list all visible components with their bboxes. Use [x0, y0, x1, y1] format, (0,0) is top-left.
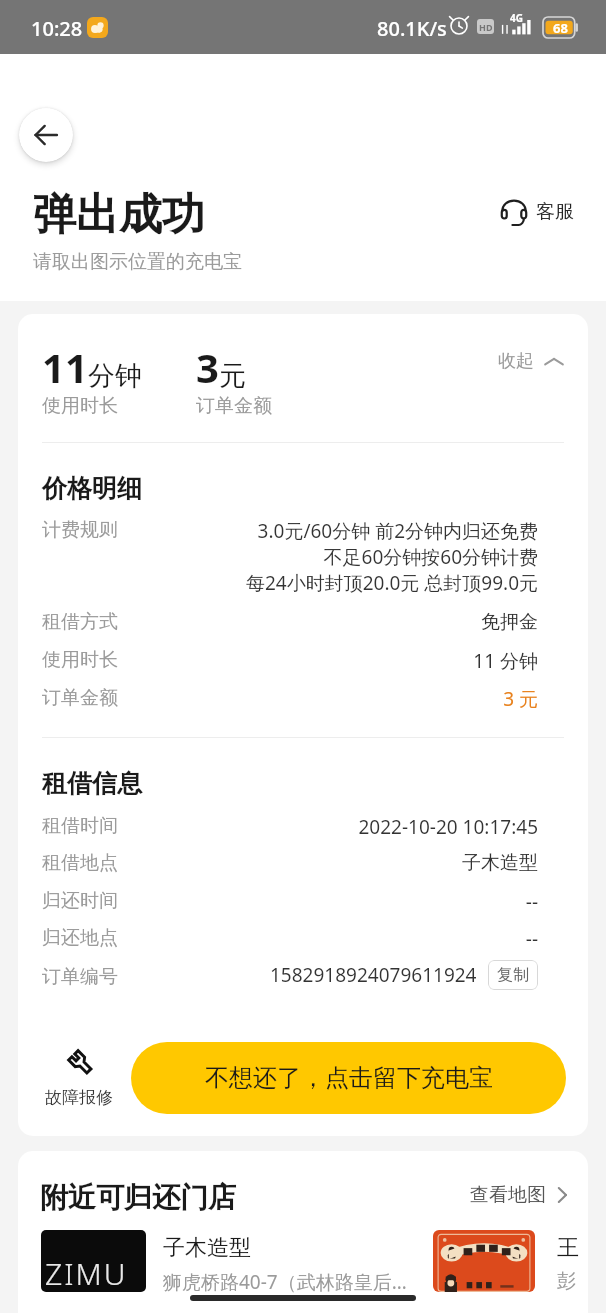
staticText: 1582918924079611924	[270, 962, 477, 988]
staticText: 归还时间	[42, 889, 118, 913]
button[interactable]: ZIMU	[41, 1230, 411, 1295]
button[interactable]: 收起	[498, 350, 564, 373]
staticText: 收起	[498, 350, 534, 373]
staticText: 彭	[557, 1269, 576, 1293]
staticText: 使用时长	[42, 394, 118, 418]
button[interactable]: 不想还了，点击留下充电宝	[131, 1042, 566, 1114]
staticText: 请取出图示位置的充电宝	[33, 250, 242, 274]
staticText: 不想还了，点击留下充电宝	[205, 1063, 493, 1093]
staticText: 2022-10-20 10:17:45	[358, 814, 538, 840]
staticText: 4G	[510, 11, 523, 25]
staticText: --	[525, 889, 538, 915]
button[interactable]: 王	[433, 1230, 579, 1293]
staticText: 80.1K/s	[377, 15, 447, 42]
staticText: 3.0元/60分钟 前2分钟内归还免费	[257, 518, 538, 544]
button[interactable]: 客服	[501, 199, 574, 225]
staticText: ZIMU	[45, 1253, 128, 1292]
staticText: 价格明细	[42, 473, 142, 504]
staticText: 订单编号	[42, 965, 118, 989]
staticText: 使用时长	[42, 648, 118, 672]
staticText: 客服	[536, 200, 574, 224]
button[interactable]: Back	[19, 108, 73, 162]
staticText: 68	[553, 19, 568, 37]
staticText: 租借时间	[42, 814, 118, 838]
staticText: 11	[42, 340, 88, 394]
staticText: HD	[479, 21, 493, 33]
staticText: 归还地点	[42, 926, 118, 950]
staticText: 复制	[497, 965, 529, 985]
staticText: 租借地点	[42, 851, 118, 875]
staticText: 不足60分钟按60分钟计费	[323, 544, 538, 570]
staticText: 租借方式	[42, 610, 118, 634]
staticText: 弹出成功	[33, 188, 205, 242]
staticText: 11 分钟	[473, 648, 538, 674]
button[interactable]: 查看地图	[470, 1183, 572, 1207]
staticText: 订单金额	[42, 686, 118, 710]
staticText: 分钟	[88, 359, 142, 393]
staticText: 3 元	[503, 686, 538, 712]
staticText: 附近可归还门店	[40, 1180, 236, 1215]
staticText: 子木造型	[163, 1234, 251, 1262]
staticText: 免押金	[481, 610, 538, 634]
staticText: 子木造型	[462, 851, 538, 875]
staticText: 租借信息	[42, 768, 142, 799]
button[interactable]: 故障报修	[44, 1042, 114, 1108]
staticText: 3	[196, 340, 219, 394]
staticText: 王	[557, 1234, 579, 1262]
staticText: 狮虎桥路40-7（武林路皇后…	[163, 1269, 407, 1295]
staticText: 订单金额	[196, 394, 272, 418]
button[interactable]: 复制	[488, 960, 538, 990]
staticText: 查看地图	[470, 1183, 546, 1207]
staticText: 故障报修	[45, 1087, 113, 1108]
staticText: 元	[219, 359, 246, 393]
staticText: --	[525, 926, 538, 952]
staticText: 10:28	[31, 15, 83, 42]
staticText: 计费规则	[42, 518, 118, 542]
staticText: 每24小时封顶20.0元 总封顶99.0元	[245, 570, 538, 596]
